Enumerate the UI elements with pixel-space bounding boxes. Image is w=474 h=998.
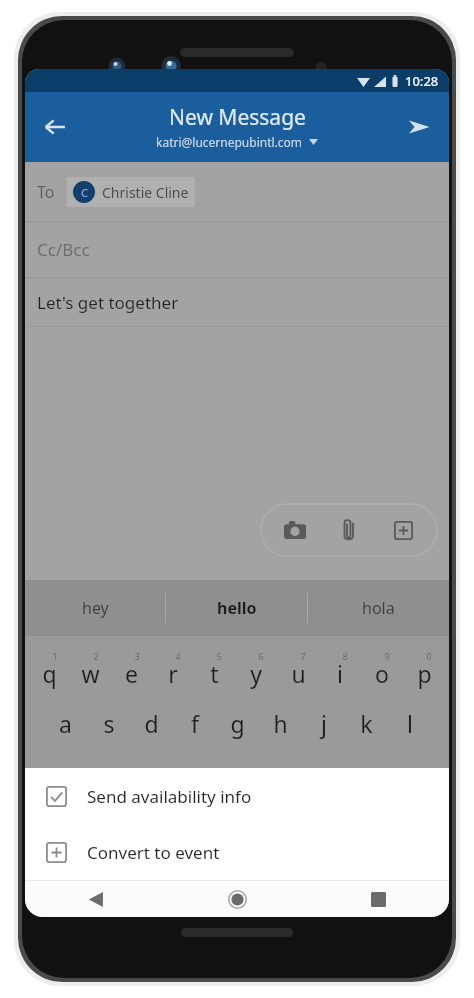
staticText: r	[168, 658, 178, 689]
button[interactable]: Recent apps	[308, 881, 449, 917]
staticText: h	[273, 708, 288, 739]
staticText: o	[375, 658, 389, 689]
staticText: 0	[426, 650, 432, 662]
staticText: 7	[300, 650, 306, 662]
staticText: New Message	[169, 103, 306, 132]
staticText: f	[191, 708, 199, 739]
button[interactable]: Back	[31, 103, 79, 151]
staticText: hello	[217, 597, 257, 619]
staticText: Convert to event	[87, 841, 220, 864]
staticText: s	[103, 708, 115, 739]
staticText: 1	[52, 650, 58, 662]
button[interactable]: 1	[29, 650, 70, 698]
staticText: l	[407, 708, 413, 739]
button[interactable]: f	[173, 708, 216, 752]
staticText: y	[250, 658, 262, 689]
button[interactable]: Send	[395, 103, 443, 151]
staticText: hey	[82, 597, 109, 619]
staticText: w	[81, 658, 100, 689]
button[interactable]: 8	[319, 650, 361, 698]
button[interactable]: 6	[235, 650, 277, 698]
staticText: Cc/Bcc	[37, 238, 90, 261]
staticText: Send availability info	[87, 785, 252, 808]
button[interactable]: Let's get together	[25, 278, 449, 326]
staticText: e	[125, 658, 138, 689]
staticText: Christie Cline	[102, 183, 189, 202]
button[interactable]: Attach file	[329, 510, 369, 550]
staticText: 10:28	[405, 72, 439, 90]
staticText: p	[417, 658, 432, 689]
staticText: a	[59, 708, 72, 739]
button[interactable]: 0	[403, 650, 445, 698]
button[interactable]: Home	[167, 881, 308, 917]
button[interactable]: g	[216, 708, 259, 752]
button[interactable]: d	[130, 708, 173, 752]
button[interactable]: 9	[361, 650, 403, 698]
staticText: Let's get together	[37, 291, 179, 314]
staticText: i	[337, 658, 343, 689]
staticText: t	[210, 658, 219, 689]
button[interactable]: 7	[277, 650, 319, 698]
button[interactable]: Send availability info	[25, 768, 449, 824]
button[interactable]: 5	[193, 650, 235, 698]
staticText: hola	[362, 597, 395, 619]
staticText: 8	[342, 650, 348, 662]
staticText: 2	[93, 650, 99, 662]
button[interactable]: Cc/Bcc	[25, 222, 449, 277]
button[interactable]: k	[345, 708, 388, 752]
button[interactable]: h	[259, 708, 302, 752]
staticText: katri@lucernepubintl.com	[156, 134, 303, 150]
button[interactable]: l	[388, 708, 431, 752]
staticText: 3	[134, 650, 140, 662]
staticText: 4	[175, 650, 181, 662]
button[interactable]: hey	[25, 580, 165, 635]
button[interactable]: Insert	[383, 510, 423, 550]
button[interactable]: 2	[70, 650, 111, 698]
button[interactable]: 3	[111, 650, 152, 698]
staticText: 6	[258, 650, 264, 662]
staticText: q	[42, 658, 57, 689]
staticText: k	[360, 708, 373, 739]
staticText: 9	[384, 650, 390, 662]
button[interactable]: Convert to event	[25, 824, 449, 880]
button[interactable]: Back	[25, 881, 167, 917]
button[interactable]: Camera	[275, 510, 315, 550]
staticText: j	[321, 708, 327, 739]
staticText: u	[291, 658, 306, 689]
button[interactable]: hola	[308, 580, 449, 635]
button[interactable]: katri@lucernepubintl.com	[156, 134, 318, 150]
button[interactable]: j	[302, 708, 345, 752]
button[interactable]: hello	[166, 580, 307, 635]
staticText: C	[81, 185, 88, 200]
button[interactable]: a	[43, 708, 87, 752]
staticText: To	[37, 181, 55, 203]
staticText: 5	[216, 650, 222, 662]
button[interactable]: s	[87, 708, 130, 752]
staticText: g	[230, 708, 245, 739]
button[interactable]: 4	[152, 650, 193, 698]
staticText: d	[144, 708, 159, 739]
button[interactable]: To	[25, 162, 449, 221]
